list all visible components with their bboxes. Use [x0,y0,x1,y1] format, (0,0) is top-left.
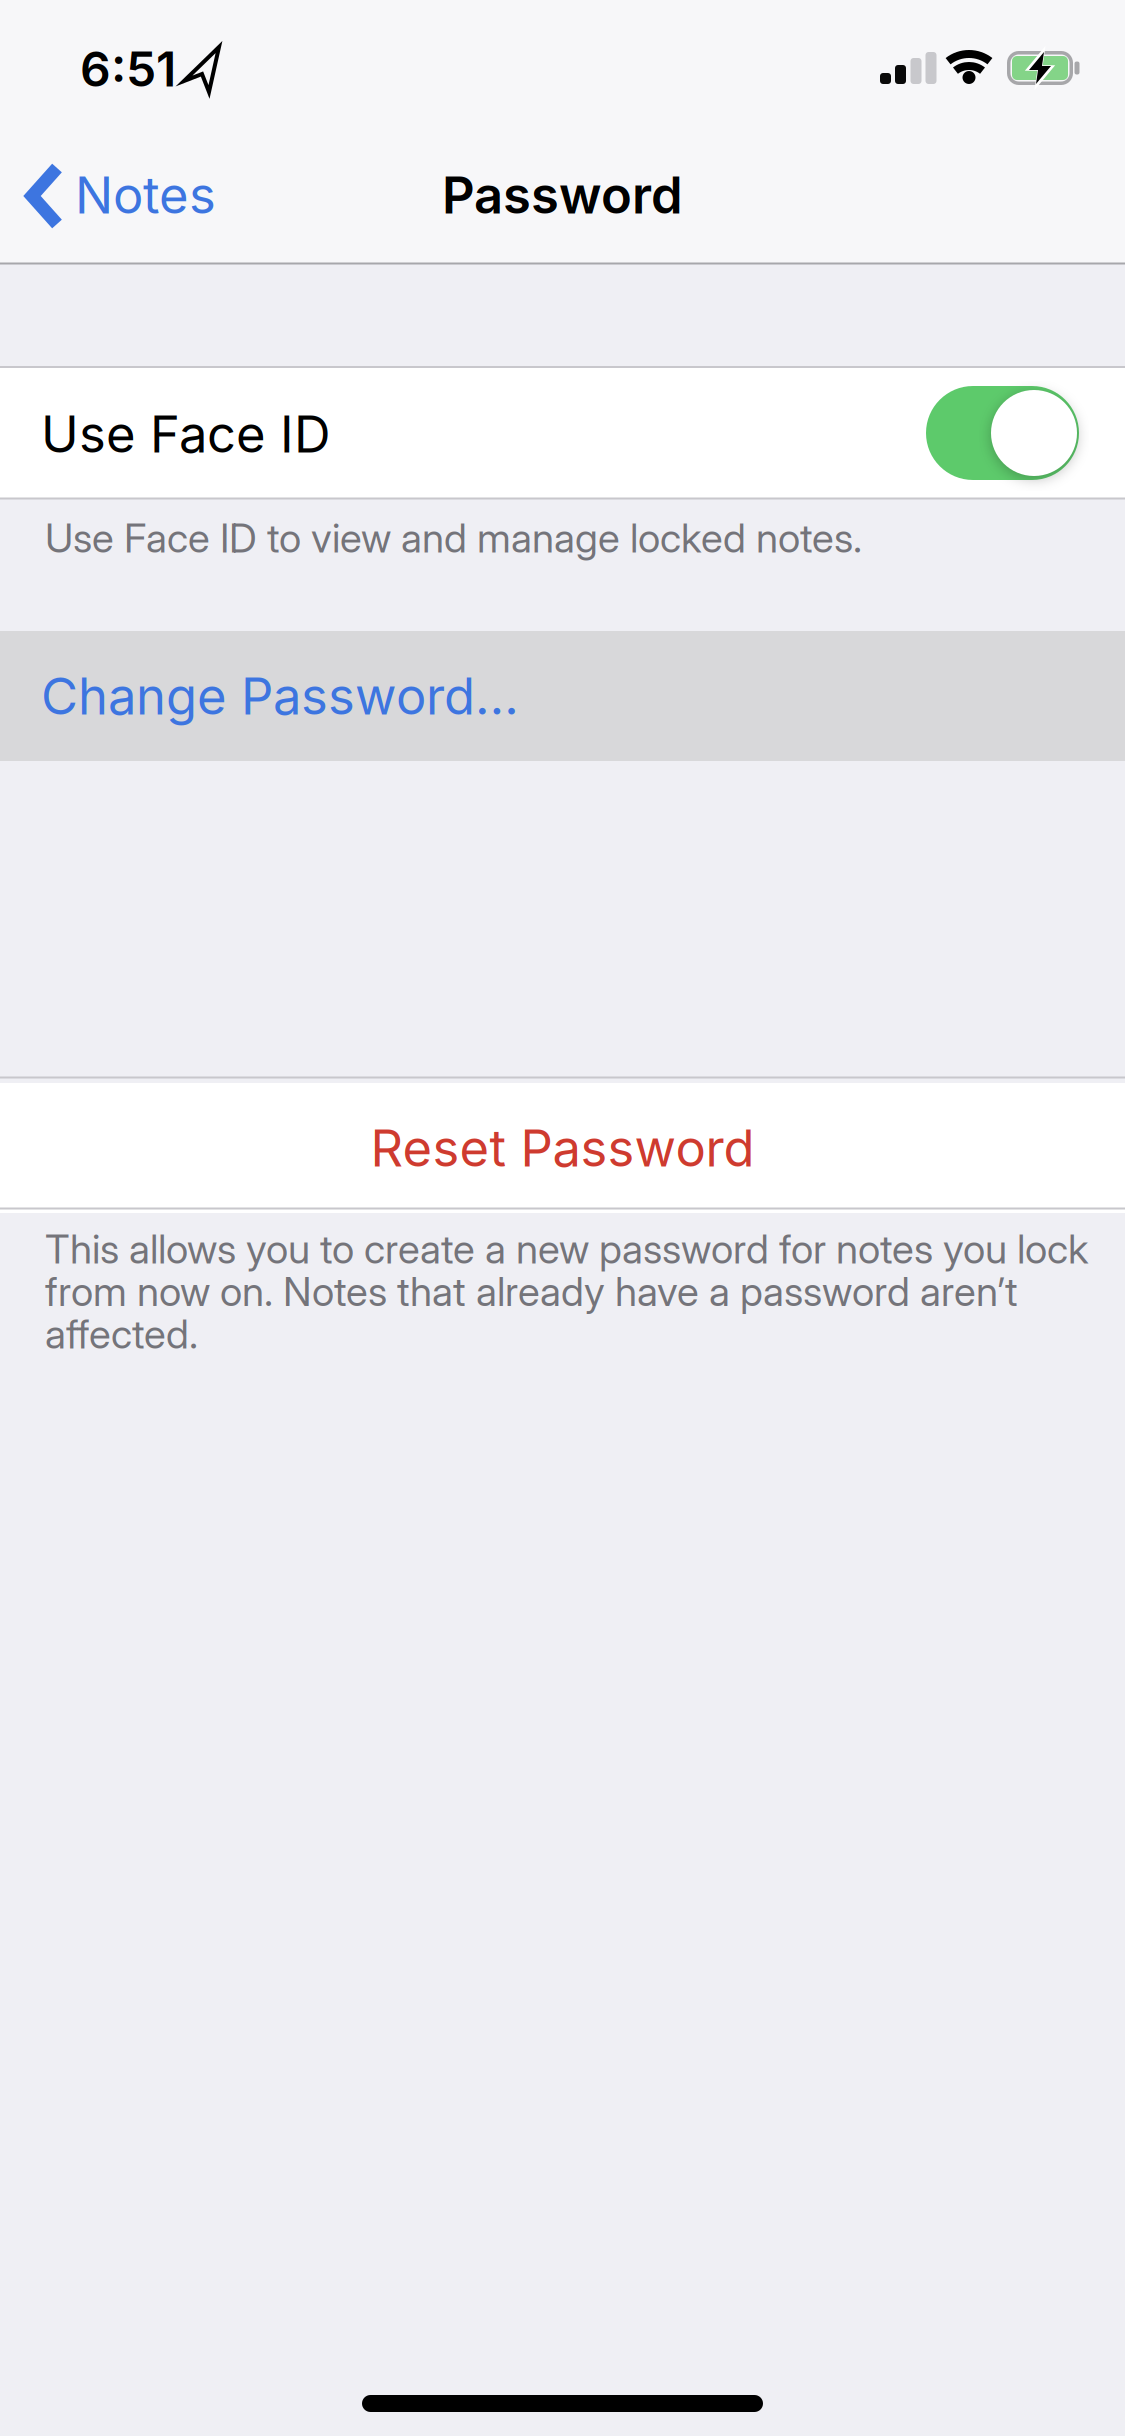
staticText: Change Password… [41,665,519,727]
staticText: Use Face ID [41,403,331,465]
staticText: Password [442,164,683,226]
staticText: affected. [45,1310,198,1358]
button[interactable]: Back to Notes [10,134,340,258]
button[interactable]: Reset Password [0,1083,1125,1213]
staticText: Notes [75,164,216,226]
button[interactable]: Use Face ID [926,386,1079,480]
staticText: This allows you to create a new password… [45,1225,1088,1273]
staticText: Use Face ID to view and manage locked no… [45,514,862,562]
staticText: 6:51 [80,40,176,98]
staticText: Reset Password [370,1117,754,1179]
button[interactable]: Change Password… [0,631,1125,761]
staticText: from now on. Notes that already have a p… [45,1267,1018,1316]
